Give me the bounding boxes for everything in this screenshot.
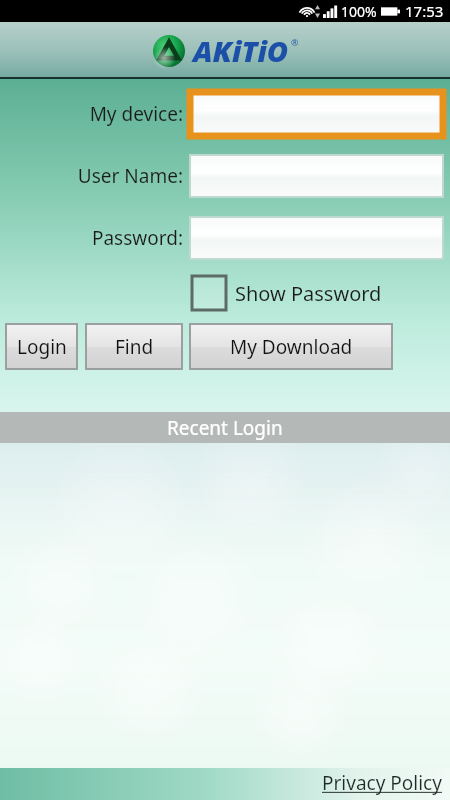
staticText: Recent Login (167, 415, 283, 441)
staticText: Privacy Policy (322, 770, 442, 796)
staticText: AKiTiO (193, 31, 289, 70)
button[interactable]: My Download (190, 324, 392, 369)
button[interactable] (190, 92, 443, 136)
staticText: User Name: (77, 163, 183, 189)
staticText: ® (291, 36, 299, 48)
staticText: 100% (341, 2, 377, 21)
staticText: Login (17, 334, 67, 360)
staticText: Find (115, 334, 154, 360)
button[interactable]: Show Password (192, 276, 382, 310)
staticText: My device: (89, 101, 183, 127)
staticText: My Download (230, 334, 353, 360)
button[interactable]: Find (86, 324, 182, 369)
staticText: Show Password (235, 280, 382, 307)
button[interactable] (190, 217, 443, 259)
button[interactable] (190, 155, 443, 197)
staticText: 17:53 (405, 1, 444, 21)
staticText: Password: (91, 225, 183, 251)
button[interactable]: Privacy Policy (320, 768, 444, 798)
button[interactable]: Login (6, 324, 77, 369)
